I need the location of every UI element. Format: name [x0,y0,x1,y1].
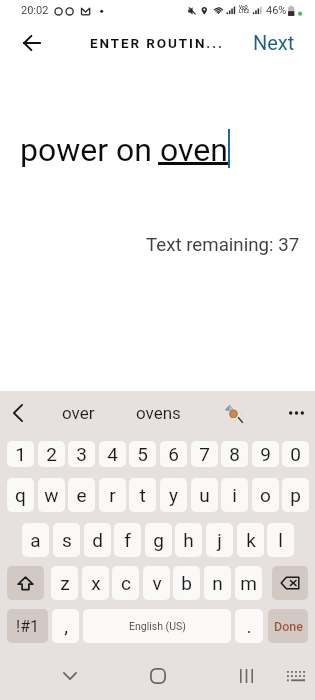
button[interactable]: Done [268,609,308,643]
button[interactable]: 7 [191,441,218,467]
staticText: y [169,484,178,506]
staticText: m [240,572,257,594]
button[interactable]: y [160,478,187,512]
button[interactable]: b [173,566,200,600]
button[interactable]: x [82,566,109,600]
staticText: g [153,529,164,551]
button[interactable]: g [145,523,172,557]
button[interactable]: ovens [130,391,186,435]
staticText: 5 [137,443,148,465]
button[interactable]: 6 [160,441,187,467]
staticText: z [60,572,70,594]
button[interactable]: l [267,523,294,557]
button[interactable]: j [206,523,233,557]
button[interactable]: 2 [38,441,65,467]
button[interactable]: e [68,478,95,512]
staticText: 3 [76,443,87,465]
button[interactable]: u [191,478,218,512]
staticText: VoQ LTE2 [239,5,250,15]
button[interactable]: r [99,478,126,512]
button[interactable]: 5 [129,441,156,467]
staticText: d [92,529,103,551]
staticText: , [64,615,68,637]
staticText: Done [274,619,303,634]
staticText: oven [160,131,228,169]
button[interactable]: n [204,566,231,600]
staticText: i [232,484,237,506]
staticText: 8 [229,443,240,465]
staticText: n [212,572,223,594]
button[interactable]: !#1 [7,609,48,643]
staticText: l [278,529,283,551]
staticText: 2 [46,443,57,465]
button[interactable]: t [129,478,156,512]
button[interactable]: 3 [68,441,95,467]
staticText: 7 [199,443,210,465]
button[interactable]: 9 [252,441,279,467]
button[interactable]: 1 [7,441,34,467]
staticText: t [139,484,146,506]
staticText: ENTER ROUTIN... [90,35,224,51]
staticText: 6 [168,443,179,465]
button[interactable]: p [282,478,309,512]
staticText: v [152,572,162,594]
button[interactable]: c [112,566,139,600]
staticText: 0 [290,443,301,465]
staticText: h [183,529,194,551]
staticText: 4 [107,443,118,465]
button[interactable]: More options [281,391,311,435]
button[interactable]: Back [13,25,50,60]
button[interactable]: Recent apps [228,652,264,700]
staticText: s [62,529,72,551]
button[interactable]: English (US) [83,609,231,643]
staticText: r [109,484,116,506]
staticText: over [62,403,95,423]
staticText: 1 [15,443,26,465]
button[interactable]: k [237,523,264,557]
button[interactable]: o [252,478,279,512]
staticText: o [260,484,271,506]
staticText: q [15,484,26,506]
staticText: c [121,572,131,594]
staticText: power on [20,131,160,169]
button[interactable]: f [114,523,141,557]
staticText: u [199,484,210,506]
staticText: 20:02 [21,4,49,17]
staticText: x [91,572,101,594]
button[interactable]: z [51,566,78,600]
button[interactable]: 4 [99,441,126,467]
button[interactable]: h [175,523,202,557]
staticText: f [124,529,131,551]
button[interactable]: a [22,523,49,557]
button[interactable]: Switch keyboard [278,652,314,700]
staticText: 46% [266,4,287,17]
staticText: a [30,529,41,551]
button[interactable]: Previous suggestions [2,391,34,435]
staticText: !#1 [16,617,39,636]
button[interactable]: q [7,478,34,512]
staticText: 9 [260,443,271,465]
button[interactable]: Backspace [272,566,308,600]
staticText: Text remaining: 37 [146,234,300,256]
button[interactable]: . [235,609,263,643]
button[interactable]: m [235,566,262,600]
button[interactable]: w [38,478,65,512]
staticText: p [290,484,301,506]
button[interactable]: , [52,609,79,643]
button[interactable]: s [53,523,80,557]
button[interactable]: Pin suggestion [218,391,248,435]
button[interactable]: 8 [221,441,248,467]
staticText: ovens [136,403,181,423]
button[interactable]: Next [245,25,303,60]
button[interactable]: v [143,566,170,600]
button[interactable]: over [50,391,106,435]
staticText: w [44,484,59,506]
button[interactable]: d [84,523,111,557]
button[interactable]: Home [140,652,176,700]
button[interactable]: Back [52,652,88,700]
button[interactable]: i [221,478,248,512]
staticText: . [246,615,252,637]
staticText: b [181,572,192,594]
button[interactable]: Shift [7,566,44,600]
button[interactable]: 0 [282,441,309,467]
